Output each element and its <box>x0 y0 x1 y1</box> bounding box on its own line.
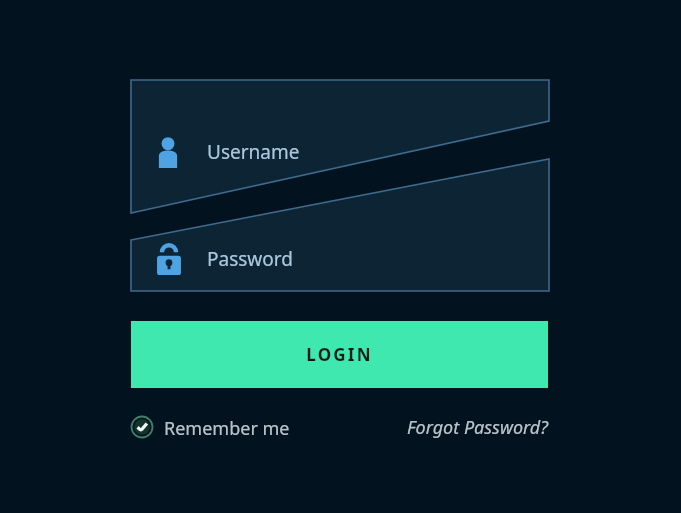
staticText: Forgot Password? <box>406 415 548 440</box>
button[interactable]: Password field <box>131 159 549 292</box>
staticText: Password <box>207 246 293 272</box>
button[interactable]: Remember me <box>130 413 302 441</box>
staticText: Remember me <box>164 416 290 441</box>
staticText: LOGIN <box>306 343 373 366</box>
button[interactable]: Username field <box>131 80 549 214</box>
button[interactable]: Forgot Password? <box>390 412 548 442</box>
button[interactable]: LOGIN <box>131 321 548 388</box>
staticText: Username <box>207 139 300 165</box>
